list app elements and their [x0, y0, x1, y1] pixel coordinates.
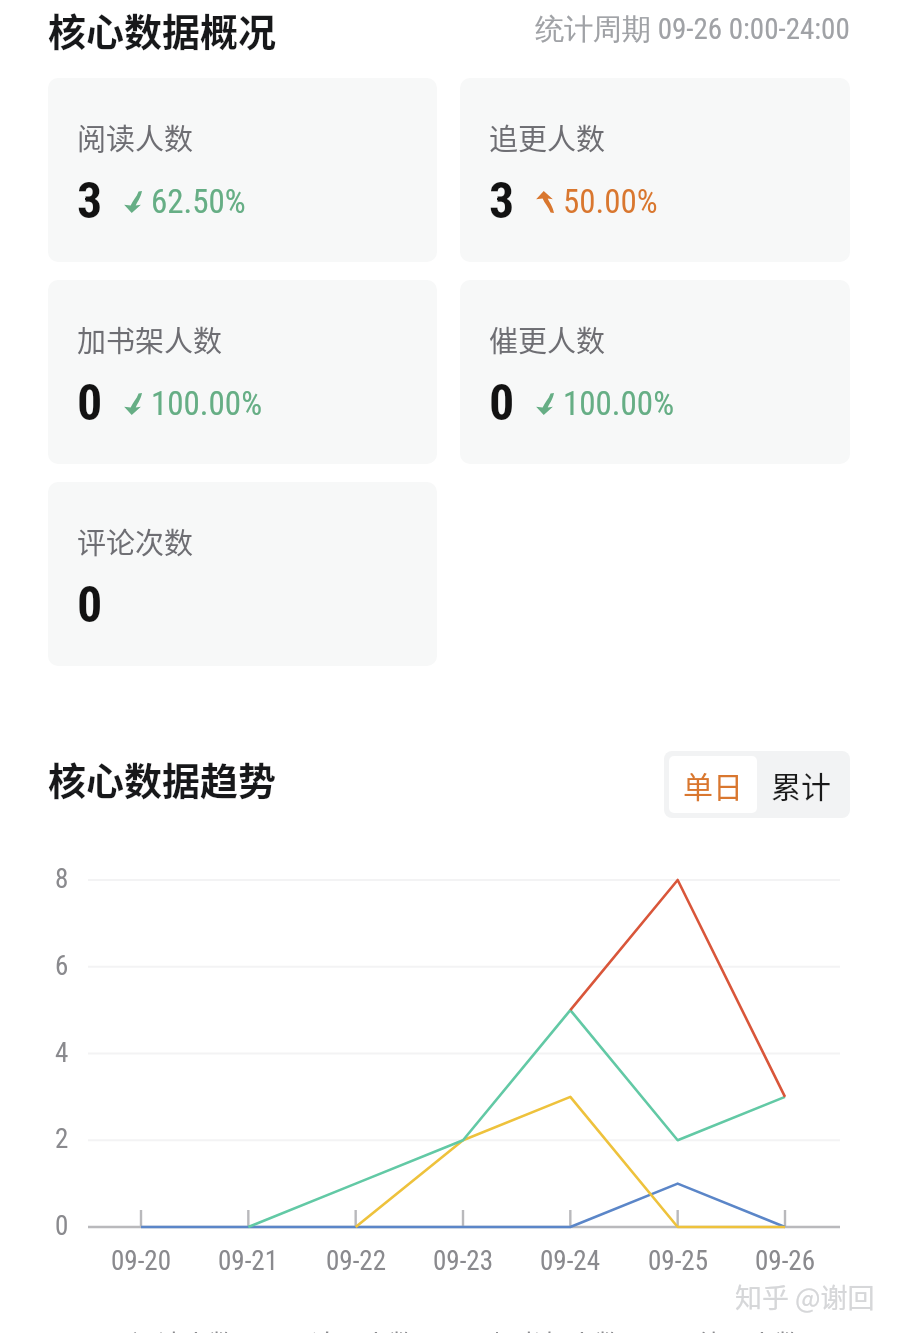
staticText: 09-25 — [648, 1245, 709, 1277]
staticText: 8 — [55, 863, 69, 895]
staticText: 62.50% — [151, 182, 246, 221]
staticText: 0 — [489, 374, 515, 433]
other: Decrease — [123, 393, 142, 415]
button[interactable]: 评论次数 — [48, 482, 437, 666]
staticText: 0 — [55, 1210, 69, 1242]
other: Decrease — [123, 191, 142, 213]
staticText: 加书架人数 — [491, 1324, 622, 1333]
button[interactable]: 催更人数 — [460, 280, 850, 464]
staticText: 4 — [55, 1037, 69, 1069]
button[interactable]: 加书架人数 — [48, 280, 437, 464]
button[interactable]: 阅读人数 — [48, 78, 437, 262]
staticText: 单日 — [683, 763, 743, 806]
staticText: 核心数据趋势 — [48, 751, 277, 806]
staticText: 追更人数 — [489, 116, 606, 158]
staticText: 6 — [55, 950, 69, 982]
staticText: 核心数据概况 — [48, 2, 277, 57]
staticText: 3 — [489, 172, 515, 231]
staticText: 加书架人数 — [77, 318, 223, 360]
staticText: 统计周期 09-26 0:00-24:00 — [535, 11, 850, 48]
staticText: 100.00% — [151, 384, 263, 423]
staticText: 09-20 — [111, 1245, 172, 1277]
staticText: 3 — [77, 172, 103, 231]
staticText: 09-26 — [755, 1245, 816, 1277]
staticText: 0 — [77, 576, 103, 635]
staticText: 催更人数 — [697, 1324, 802, 1333]
staticText: 100.00% — [563, 384, 675, 423]
staticText: 09-21 — [218, 1245, 279, 1277]
staticText: 阅读人数 — [77, 116, 194, 158]
staticText: 知乎 @谢回 — [735, 1277, 875, 1316]
button[interactable]: 累计 — [757, 756, 845, 813]
button[interactable]: 追更人数 — [460, 78, 850, 262]
other: Decrease — [535, 393, 554, 415]
staticText: 2 — [55, 1123, 69, 1155]
staticText: 累计 — [771, 763, 831, 806]
staticText: 催更人数 — [489, 318, 606, 360]
staticText: 09-24 — [540, 1245, 601, 1277]
staticText: 评论次数 — [77, 520, 194, 562]
staticText: 09-22 — [326, 1245, 387, 1277]
staticText: 09-23 — [433, 1245, 494, 1277]
other: Increase — [535, 191, 554, 213]
button[interactable]: 单日 — [669, 756, 757, 813]
staticText: 阅读人数 — [131, 1324, 236, 1333]
staticText: 追更人数 — [311, 1324, 416, 1333]
staticText: 50.00% — [563, 182, 658, 221]
staticText: 0 — [77, 374, 103, 433]
